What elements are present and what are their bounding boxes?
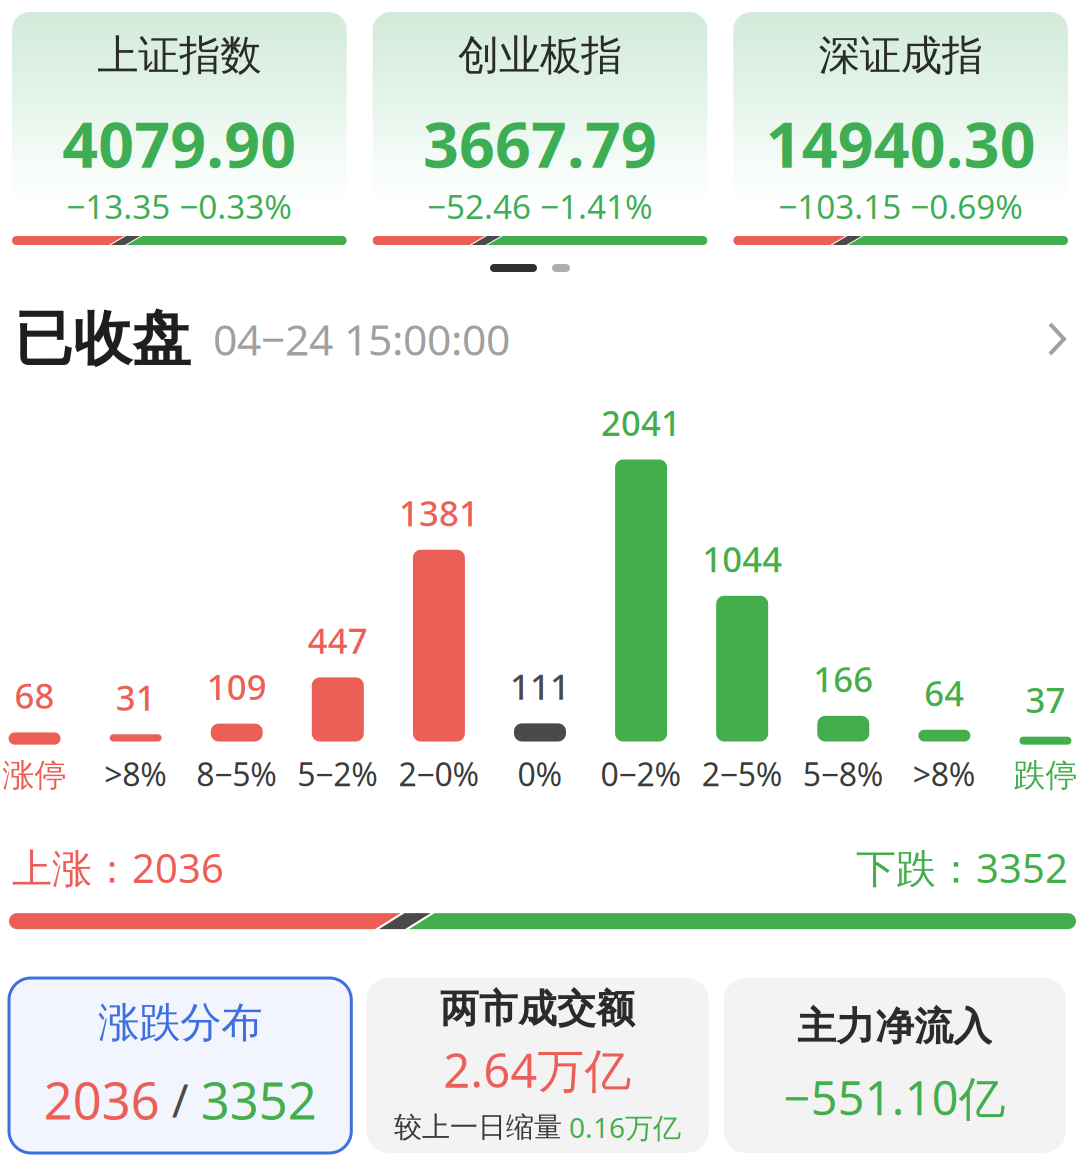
staticText: 109 (207, 664, 267, 710)
button[interactable]: 主力净流入 (724, 978, 1066, 1153)
staticText: 上涨：2036 (12, 841, 224, 894)
staticText: 3352 (201, 1066, 317, 1133)
button[interactable]: 涨跌分布 (9, 978, 351, 1153)
staticText: 111 (510, 663, 570, 709)
button[interactable]: 两市成交额 (366, 978, 709, 1153)
staticText: 1044 (702, 536, 782, 582)
staticText: 涨跌分布 (98, 997, 262, 1048)
staticText: 2036 (44, 1066, 160, 1133)
staticText: 0.16万亿 (569, 1109, 681, 1146)
staticText: 2−0% (398, 752, 479, 795)
staticText: 68 (14, 672, 54, 718)
staticText: 2.64万亿 (443, 1039, 631, 1101)
staticText: 涨停 (2, 756, 66, 795)
staticText: 64 (924, 670, 964, 716)
staticText: 深证成指 (819, 30, 983, 81)
staticText: 8−5% (196, 752, 277, 795)
staticText: 4079.90 (62, 102, 296, 185)
staticText: 5−8% (803, 752, 884, 795)
staticText: 跌停 (1013, 756, 1077, 795)
staticText: 已收盘 (14, 303, 191, 375)
staticText: −103.15 −0.69% (778, 184, 1023, 228)
staticText: >8% (104, 752, 167, 795)
staticText: 2−5% (702, 752, 783, 795)
staticText: 较上一日缩量 (394, 1110, 562, 1144)
staticText: 两市成交额 (440, 985, 635, 1033)
staticText: 3667.79 (423, 102, 657, 185)
button[interactable]: 已收盘 (0, 291, 1080, 387)
staticText: 447 (308, 617, 368, 663)
staticText: 创业板指 (458, 30, 622, 81)
staticText: 166 (813, 656, 873, 702)
staticText: −551.10亿 (784, 1066, 1006, 1128)
staticText: −52.46 −1.41% (427, 184, 653, 228)
staticText: 上证指数 (97, 30, 261, 81)
staticText: 14940.30 (766, 102, 1036, 185)
staticText: 2041 (601, 399, 681, 445)
staticText: −13.35 −0.33% (66, 184, 292, 228)
staticText: 下跌：3352 (856, 841, 1068, 894)
staticText: 0−2% (601, 752, 682, 795)
staticText: 04−24 15:00:00 (213, 311, 510, 367)
staticText: 1381 (399, 490, 479, 536)
staticText: 37 (1025, 677, 1065, 723)
staticText: 5−2% (297, 752, 378, 795)
staticText: >8% (913, 752, 976, 795)
staticText: 主力净流入 (797, 1003, 992, 1050)
staticText: / (172, 1070, 189, 1130)
staticText: 31 (116, 674, 156, 720)
staticText: 0% (517, 752, 562, 795)
